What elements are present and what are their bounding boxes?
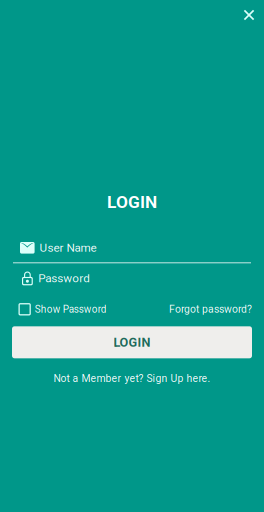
staticText: Forgot password? xyxy=(169,303,252,315)
staticText: Show Password xyxy=(35,303,107,315)
button[interactable]: Forgot password? xyxy=(169,303,252,315)
button[interactable]: Show Password xyxy=(18,303,107,315)
staticText: User Name xyxy=(40,241,97,255)
staticText: LOGIN xyxy=(113,335,150,350)
button[interactable]: LOGIN xyxy=(12,326,252,358)
button[interactable]: Not a Member yet? Sign Up here. xyxy=(53,372,210,384)
staticText: Password xyxy=(38,271,90,285)
staticText: Not a Member yet? Sign Up here. xyxy=(53,372,210,384)
button[interactable]: Close xyxy=(236,2,262,28)
staticText: LOGIN xyxy=(107,192,157,212)
